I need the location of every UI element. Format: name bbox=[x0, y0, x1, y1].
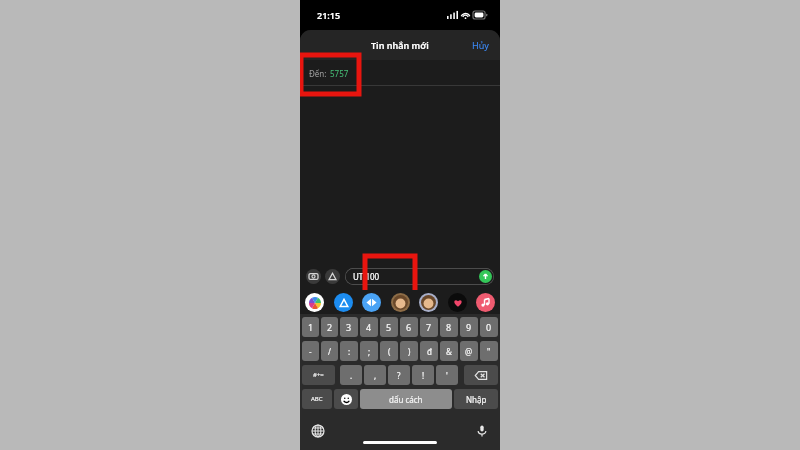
button[interactable]: / bbox=[321, 341, 338, 361]
button[interactable]: App Store bbox=[325, 269, 340, 284]
staticText: . bbox=[350, 370, 353, 381]
button[interactable]: 4 bbox=[360, 317, 378, 337]
staticText: ! bbox=[422, 370, 425, 381]
staticText: 8 bbox=[446, 321, 452, 333]
button[interactable]: ) bbox=[400, 341, 418, 361]
staticText: 1 bbox=[308, 321, 314, 333]
staticText: UT 100 bbox=[353, 271, 380, 282]
staticText: 4 bbox=[366, 321, 372, 333]
staticText: 2 bbox=[327, 321, 333, 333]
button[interactable]: App 5 bbox=[419, 293, 438, 312]
button[interactable]: ? bbox=[388, 365, 410, 385]
staticText: ? bbox=[397, 370, 401, 381]
button[interactable]: App 3 bbox=[362, 293, 381, 312]
staticText: : bbox=[348, 346, 351, 357]
button[interactable]: App 1 bbox=[305, 293, 324, 312]
button[interactable]: Send bbox=[479, 270, 492, 283]
staticText: #+= bbox=[313, 371, 324, 379]
button[interactable]: @ bbox=[460, 341, 478, 361]
staticText: " bbox=[487, 346, 491, 357]
staticText: ; bbox=[368, 346, 371, 357]
button[interactable]: : bbox=[340, 341, 358, 361]
button[interactable]: 7 bbox=[420, 317, 438, 337]
button[interactable]: ( bbox=[380, 341, 398, 361]
button[interactable]: Hủy bbox=[461, 32, 500, 58]
button[interactable]: UT 100 bbox=[345, 268, 494, 285]
staticText: & bbox=[446, 346, 452, 357]
staticText: ( bbox=[388, 346, 391, 357]
staticText: 3 bbox=[346, 321, 352, 333]
button[interactable]: Dictation bbox=[471, 420, 493, 442]
staticText: , bbox=[374, 370, 377, 381]
button[interactable]: App 6 bbox=[448, 293, 467, 312]
button[interactable]: App 2 bbox=[334, 293, 353, 312]
button[interactable]: ' bbox=[436, 365, 458, 385]
button[interactable]: - bbox=[302, 341, 319, 361]
staticText: 21:15 bbox=[317, 9, 341, 21]
staticText: 7 bbox=[426, 321, 432, 333]
button[interactable]: ; bbox=[360, 341, 378, 361]
button[interactable]: dấu cách bbox=[360, 389, 452, 409]
staticText: 0 bbox=[486, 321, 492, 333]
staticText: 5 bbox=[386, 321, 392, 333]
staticText: 5757 bbox=[330, 68, 349, 79]
button[interactable]: ABC bbox=[302, 389, 332, 409]
button[interactable]: 2 bbox=[321, 317, 338, 337]
button[interactable]: . bbox=[340, 365, 362, 385]
button[interactable]: Đến: bbox=[300, 60, 349, 86]
button[interactable]: & bbox=[440, 341, 458, 361]
button[interactable]: " bbox=[480, 341, 498, 361]
button[interactable]: , bbox=[364, 365, 386, 385]
button[interactable]: 9 bbox=[460, 317, 478, 337]
staticText: / bbox=[328, 346, 331, 357]
button[interactable]: 1 bbox=[302, 317, 319, 337]
staticText: dấu cách bbox=[389, 394, 423, 405]
staticText: - bbox=[309, 346, 312, 357]
button[interactable]: App 7 bbox=[476, 293, 495, 312]
button[interactable]: #+= bbox=[302, 365, 335, 385]
staticText: Tin nhắn mới bbox=[371, 39, 429, 51]
button[interactable]: 8 bbox=[440, 317, 458, 337]
button[interactable]: Nhập bbox=[454, 389, 498, 409]
staticText: ABC bbox=[311, 395, 323, 403]
staticText: Nhập bbox=[466, 394, 487, 405]
button[interactable]: ! bbox=[412, 365, 434, 385]
button[interactable]: 5 bbox=[380, 317, 398, 337]
button[interactable]: Camera bbox=[306, 269, 321, 284]
button[interactable]: Change keyboard bbox=[307, 420, 329, 442]
button[interactable]: Emoji bbox=[334, 389, 358, 409]
staticText: Hủy bbox=[472, 39, 489, 51]
staticText: @ bbox=[465, 346, 473, 357]
button[interactable]: 3 bbox=[340, 317, 358, 337]
staticText: Đến: bbox=[309, 68, 327, 79]
button[interactable]: Backspace bbox=[464, 365, 498, 385]
staticText: 6 bbox=[406, 321, 412, 333]
button[interactable]: đ bbox=[420, 341, 438, 361]
button[interactable]: 0 bbox=[480, 317, 498, 337]
button[interactable]: 6 bbox=[400, 317, 418, 337]
staticText: 9 bbox=[466, 321, 472, 333]
button[interactable]: App 4 bbox=[391, 293, 410, 312]
staticText: ) bbox=[408, 346, 411, 357]
staticText: ' bbox=[446, 370, 448, 381]
staticText: đ bbox=[427, 346, 432, 357]
